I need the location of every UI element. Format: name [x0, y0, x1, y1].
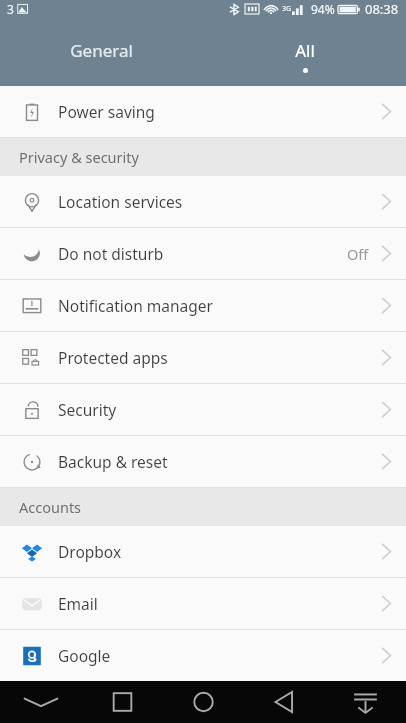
staticText: Off: [347, 244, 369, 264]
button[interactable]: Location services: [0, 176, 406, 228]
staticText: General: [70, 39, 133, 62]
staticText: 08:38: [365, 0, 399, 18]
staticText: Accounts: [19, 497, 82, 517]
button[interactable]: Power saving: [0, 86, 406, 138]
button[interactable]: General: [0, 26, 203, 86]
button[interactable]: Notification manager: [0, 280, 406, 332]
button[interactable]: Hide keyboard: [0, 681, 82, 723]
button[interactable]: Backup & reset: [0, 436, 406, 488]
button[interactable]: Recent apps: [82, 681, 163, 723]
button[interactable]: Google: [0, 630, 406, 681]
button[interactable]: Dropbox: [0, 526, 406, 578]
button[interactable]: Back: [244, 681, 325, 723]
staticText: Power saving: [58, 101, 155, 122]
staticText: 3: [7, 1, 14, 17]
staticText: Backup & reset: [58, 451, 168, 472]
button[interactable]: Security: [0, 384, 406, 436]
button[interactable]: Protected apps: [0, 332, 406, 384]
staticText: Location services: [58, 191, 183, 212]
staticText: All: [295, 39, 315, 62]
button[interactable]: Email: [0, 578, 406, 630]
button[interactable]: Hide navigation bar: [325, 681, 406, 723]
staticText: Do not disturb: [58, 243, 164, 264]
staticText: 3G: [282, 4, 292, 14]
button[interactable]: Home: [163, 681, 244, 723]
button[interactable]: Do not disturb: [0, 228, 406, 280]
staticText: Dropbox: [58, 541, 122, 562]
staticText: Protected apps: [58, 347, 168, 368]
button[interactable]: All: [203, 26, 406, 86]
staticText: Email: [58, 593, 98, 614]
staticText: Notification manager: [58, 295, 213, 316]
staticText: Google: [58, 645, 111, 666]
staticText: Security: [58, 399, 117, 420]
staticText: Privacy & security: [19, 147, 139, 167]
staticText: 94%: [311, 1, 335, 17]
